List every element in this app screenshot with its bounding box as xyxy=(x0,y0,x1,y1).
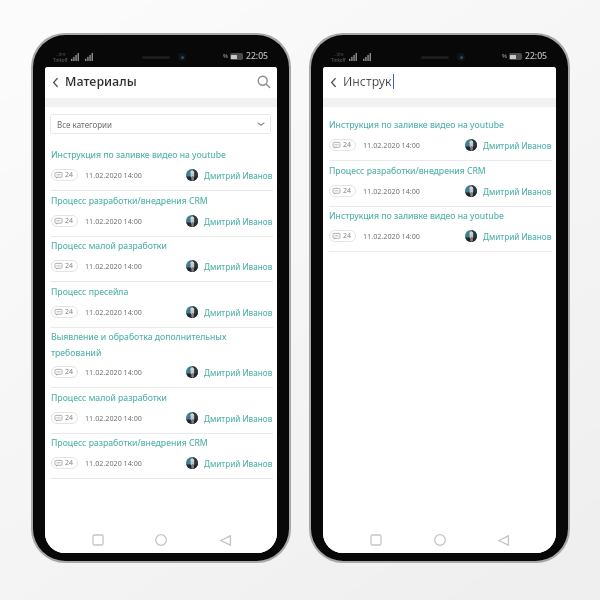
button[interactable]: Инструкция по заливке видео на youtube xyxy=(323,207,556,252)
staticText: 11.02.2020 14:00 xyxy=(85,216,142,226)
staticText: 11.02.2020 14:00 xyxy=(363,231,420,241)
staticText: 11.02.2020 14:00 xyxy=(85,307,142,317)
button[interactable]: Инструкция по заливке видео на youtube xyxy=(45,146,277,191)
staticText: 24 xyxy=(65,458,74,468)
staticText: Процесс малой разработки xyxy=(51,240,167,252)
staticText: Процесс разработки/внедрения CRM xyxy=(329,165,486,177)
staticText: Выявление и обработка дополнительных тре… xyxy=(51,331,273,358)
staticText: 24 xyxy=(65,170,74,180)
staticText: Tinkoff xyxy=(331,57,346,63)
button[interactable]: Процесс малой разработки xyxy=(45,388,277,434)
staticText: Дмитрий Иванов xyxy=(483,231,552,242)
staticText: 11.02.2020 14:00 xyxy=(85,458,142,468)
button[interactable]: Search xyxy=(254,72,274,92)
staticText: Дмитрий Иванов xyxy=(204,170,273,181)
button[interactable]: Back xyxy=(324,73,342,91)
staticText: Инструк xyxy=(343,73,392,90)
button[interactable]: Инструкция по заливке видео на youtube xyxy=(323,116,556,161)
button[interactable]: Процесс разработки/внедрения CRM xyxy=(323,161,556,207)
button[interactable]: Все категории xyxy=(50,114,271,134)
staticText: 24 xyxy=(65,307,74,317)
button[interactable]: Процесс пресейла xyxy=(45,282,277,328)
staticText: 24 xyxy=(65,216,74,226)
staticText: % xyxy=(223,52,228,60)
staticText: Дмитрий Иванов xyxy=(204,367,273,378)
staticText: 24 xyxy=(343,140,352,150)
staticText: 11.02.2020 14:00 xyxy=(85,261,142,271)
staticText: 24 xyxy=(65,367,74,377)
staticText: Инструкция по заливке видео на youtube xyxy=(329,210,504,222)
staticText: Процесс разработки/внедрения CRM xyxy=(51,437,208,449)
staticText: Процесс разработки/внедрения CRM xyxy=(51,195,208,207)
staticText: Дмитрий Иванов xyxy=(204,261,273,272)
button[interactable]: Процесс разработки/внедрения CRM xyxy=(45,191,277,237)
staticText: Инструкция по заливке видео на youtube xyxy=(51,149,226,161)
staticText: 11.02.2020 14:00 xyxy=(85,170,142,180)
staticText: Tinkoff xyxy=(53,57,68,63)
staticText: Дмитрий Иванов xyxy=(204,413,273,424)
button[interactable]: Recents xyxy=(365,529,387,551)
staticText: Процесс малой разработки xyxy=(51,392,167,404)
button[interactable]: Recents xyxy=(87,529,109,551)
staticText: Дмитрий Иванов xyxy=(483,186,552,197)
staticText: 11.02.2020 14:00 xyxy=(363,186,420,196)
staticText: Все категории xyxy=(57,119,113,130)
button[interactable]: Выявление и обработка дополнительных тре… xyxy=(45,328,277,388)
staticText: ..itre xyxy=(334,51,344,57)
staticText: 24 xyxy=(343,186,352,196)
staticText: 22:05 xyxy=(525,50,547,62)
staticText: 11.02.2020 14:00 xyxy=(363,140,420,150)
staticText: Процесс пресейла xyxy=(51,286,129,298)
staticText: 22:05 xyxy=(246,50,268,62)
button[interactable]: Home xyxy=(429,529,451,551)
staticText: 11.02.2020 14:00 xyxy=(85,413,142,423)
staticText: Дмитрий Иванов xyxy=(204,458,273,469)
staticText: Инструкция по заливке видео на youtube xyxy=(329,119,504,131)
staticText: 11.02.2020 14:00 xyxy=(85,367,142,377)
button[interactable]: Back xyxy=(214,529,236,551)
button[interactable]: Back xyxy=(492,529,514,551)
button[interactable]: Процесс разработки/внедрения CRM xyxy=(45,434,277,479)
button[interactable]: Home xyxy=(150,529,172,551)
staticText: 24 xyxy=(65,413,74,423)
button[interactable]: Back xyxy=(46,73,64,91)
staticText: Материалы xyxy=(65,73,137,90)
staticText: 24 xyxy=(65,261,74,271)
button[interactable]: Процесс малой разработки xyxy=(45,237,277,282)
staticText: % xyxy=(502,52,507,60)
staticText: Дмитрий Иванов xyxy=(483,140,552,151)
staticText: ..itre xyxy=(56,51,66,57)
staticText: Дмитрий Иванов xyxy=(204,307,273,318)
staticText: 24 xyxy=(343,231,352,241)
staticText: Дмитрий Иванов xyxy=(204,216,273,227)
